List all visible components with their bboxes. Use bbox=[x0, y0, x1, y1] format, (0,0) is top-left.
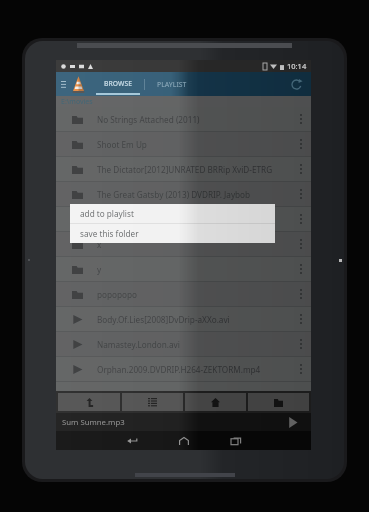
button[interactable]: Open navigation drawer bbox=[58, 72, 68, 96]
staticText: BROWSE bbox=[104, 79, 132, 88]
button[interactable]: Namastey.London.avi bbox=[56, 332, 311, 356]
button[interactable]: More options bbox=[291, 182, 311, 206]
button[interactable]: Refresh bbox=[286, 74, 306, 94]
button[interactable]: The Dictator[2012]UNRATED BRRip XviD-ETR… bbox=[56, 157, 311, 181]
staticText: Orphan.2009.DVDRIP.H264-ZEKTORM.mp4 bbox=[97, 364, 291, 375]
staticText: 10:14 bbox=[287, 61, 307, 71]
staticText: Namastey.London.avi bbox=[97, 339, 291, 350]
button[interactable]: popopopo bbox=[56, 282, 311, 306]
button[interactable]: Body.Of.Lies[2008]DvDrip-aXXo.avi bbox=[56, 307, 311, 331]
button[interactable]: Play bbox=[275, 413, 311, 431]
button[interactable]: More options bbox=[291, 132, 311, 156]
button[interactable]: Recent apps bbox=[210, 431, 262, 450]
staticText: No Strings Attached (2011) bbox=[97, 114, 291, 125]
staticText: Shoot Em Up bbox=[97, 139, 291, 150]
button[interactable]: Back bbox=[106, 431, 158, 450]
button[interactable]: More options bbox=[291, 332, 311, 356]
button[interactable]: Shoot Em Up bbox=[56, 132, 311, 156]
staticText: The Great Gatsby (2013) DVDRIP. Jaybob bbox=[97, 189, 291, 200]
button[interactable]: More options bbox=[291, 257, 311, 281]
staticText: y bbox=[97, 264, 291, 275]
staticText: save this folder bbox=[80, 228, 139, 239]
button[interactable]: y bbox=[56, 257, 311, 281]
button[interactable]: Home bbox=[185, 393, 246, 411]
button[interactable]: BROWSE bbox=[92, 72, 144, 96]
button[interactable]: More options bbox=[291, 232, 311, 256]
button[interactable]: VLC bbox=[68, 72, 88, 96]
button[interactable]: x bbox=[56, 232, 311, 256]
staticText: add to playlist bbox=[80, 208, 134, 219]
button[interactable]: The Wolverine (2013) bbox=[56, 207, 311, 231]
button[interactable]: Up bbox=[58, 393, 120, 411]
button[interactable]: save this folder bbox=[70, 224, 275, 243]
button[interactable]: Playlist bbox=[122, 393, 183, 411]
button[interactable]: More options bbox=[291, 357, 311, 381]
button[interactable]: More options bbox=[291, 282, 311, 306]
button[interactable]: Sum Sumne.mp3 bbox=[56, 413, 311, 431]
staticText: The Dictator[2012]UNRATED BRRip XviD-ETR… bbox=[97, 164, 291, 175]
button[interactable]: Browse folders bbox=[248, 393, 309, 411]
button[interactable]: Orphan.2009.DVDRIP.H264-ZEKTORM.mp4 bbox=[56, 357, 311, 381]
staticText: x bbox=[97, 239, 291, 250]
button[interactable]: PLAYLIST bbox=[145, 72, 199, 96]
button[interactable]: More options bbox=[291, 307, 311, 331]
button[interactable]: add to playlist bbox=[70, 204, 275, 223]
staticText: E:\movies bbox=[61, 97, 93, 107]
staticText: PLAYLIST bbox=[157, 80, 187, 89]
button[interactable]: More options bbox=[291, 157, 311, 181]
button[interactable]: The Great Gatsby (2013) DVDRIP. Jaybob bbox=[56, 182, 311, 206]
button[interactable]: More options bbox=[291, 107, 311, 131]
staticText: Sum Sumne.mp3 bbox=[62, 417, 275, 428]
staticText: Body.Of.Lies[2008]DvDrip-aXXo.avi bbox=[97, 314, 291, 325]
staticText: The Wolverine (2013) bbox=[97, 214, 291, 225]
button[interactable]: More options bbox=[291, 207, 311, 231]
button[interactable]: No Strings Attached (2011) bbox=[56, 107, 311, 131]
button[interactable]: Home bbox=[158, 431, 210, 450]
staticText: popopopo bbox=[97, 289, 291, 300]
